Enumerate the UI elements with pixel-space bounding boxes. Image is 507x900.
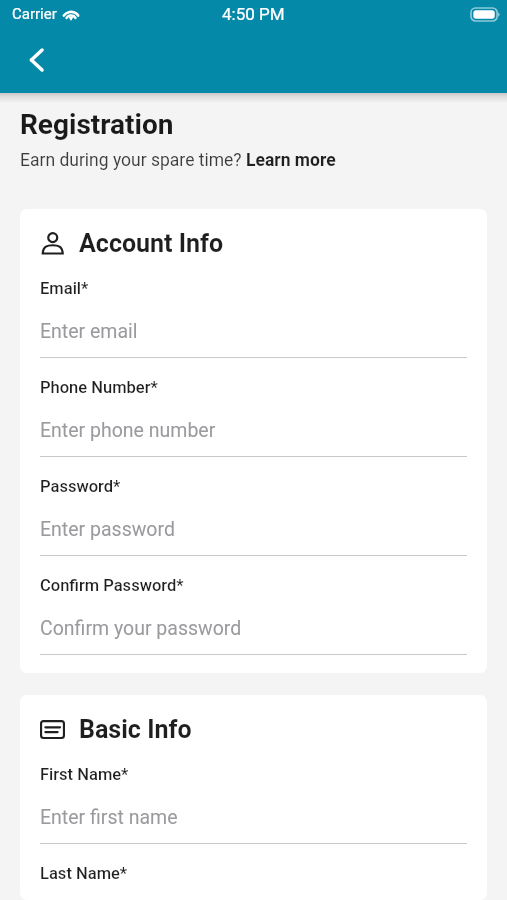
staticText: Last Name* [40,864,128,882]
staticText: Earn during your spare time? [20,150,246,171]
staticText: Enter phone number [40,419,216,442]
staticText: Confirm your password [40,617,242,640]
staticText: Carrier [12,5,57,23]
button[interactable]: Last Name* [40,864,467,882]
staticText: Email* [40,279,89,298]
staticText: Basic Info [79,715,192,744]
button[interactable]: First Name* [40,765,467,844]
staticText: Account Info [79,229,224,258]
staticText: 4:50 PM [222,4,285,24]
button[interactable]: Phone Number* [40,378,467,457]
staticText: Enter email [40,320,138,343]
staticText: Enter password [40,518,175,541]
staticText: First Name* [40,765,129,784]
button[interactable]: Confirm Password* [40,576,467,655]
staticText: Phone Number* [40,378,158,397]
button[interactable]: Email* [40,279,467,358]
button[interactable]: Back [11,36,59,84]
button[interactable]: Password* [40,477,467,556]
staticText: Confirm Password* [40,576,184,595]
button[interactable]: Earn during your spare time? [20,150,336,171]
staticText: Learn more [246,150,336,171]
staticText: Registration [20,108,174,141]
staticText: Password* [40,477,121,496]
staticText: Enter first name [40,806,178,829]
